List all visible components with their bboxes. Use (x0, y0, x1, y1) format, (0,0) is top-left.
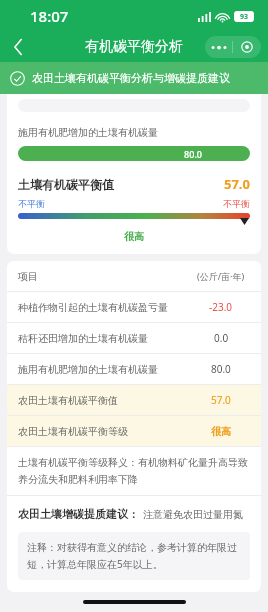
staticText: 土壤有机碳平衡值 (18, 177, 114, 192)
staticText: 土壤有机碳平衡等级释义：有机物料矿化量升高导致养分流失和肥料利用率下降 (18, 456, 250, 486)
button[interactable]: 施用有机肥增加的土壤有机碳量 (7, 354, 261, 384)
staticText: 种植作物引起的土壤有机碳盈亏量 (18, 301, 168, 314)
staticText: 农田土壤有机碳平衡等级 (18, 425, 128, 438)
staticText: 秸秆还田增加的土壤有机碳量 (18, 332, 148, 345)
button[interactable]: 项目 (7, 261, 261, 291)
staticText: 注意避免农田过量用氮 (143, 508, 243, 521)
staticText: 不平衡 (223, 198, 250, 209)
staticText: 93 (240, 12, 249, 22)
staticText: 施用有机肥增加的土壤有机碳量 (18, 363, 158, 376)
staticText: 很高 (18, 230, 250, 243)
staticText: 很高 (211, 425, 231, 438)
button[interactable]: More (205, 36, 232, 58)
button[interactable]: Back (0, 32, 36, 62)
button[interactable]: 种植作物引起的土壤有机碳盈亏量 (7, 292, 261, 322)
staticText: 不平衡 (18, 198, 45, 209)
staticText: 农田土壤有机碳平衡分析与增碳提质建议 (32, 71, 230, 85)
staticText: 57.0 (224, 175, 250, 193)
staticText: 80.0 (211, 362, 231, 376)
staticText: -23.0 (209, 300, 233, 314)
staticText: 施用有机肥增加的土壤有机碳量 (18, 126, 158, 139)
button[interactable]: Close (233, 36, 261, 58)
button[interactable]: 秸秆还田增加的土壤有机碳量 (7, 323, 261, 353)
staticText: (公斤/亩·年) (197, 270, 245, 282)
staticText: 57.0 (211, 393, 231, 407)
staticText: 农田土壤有机碳平衡值 (18, 394, 118, 407)
staticText: 0.0 (214, 331, 229, 345)
staticText: 注释：对获得有意义的结论，参考计算的年限过短，计算总年限应在5年以上。 (27, 541, 241, 571)
staticText: 有机碳平衡分析 (85, 38, 183, 56)
staticText: 80.0 (18, 148, 202, 160)
staticText: 18:07 (30, 6, 69, 26)
button[interactable]: 农田土壤有机碳平衡等级 (7, 416, 261, 446)
staticText: 项目 (18, 270, 38, 283)
staticText: 农田土壤增碳提质建议： (18, 507, 139, 521)
button[interactable]: 农田土壤有机碳平衡值 (7, 385, 261, 415)
